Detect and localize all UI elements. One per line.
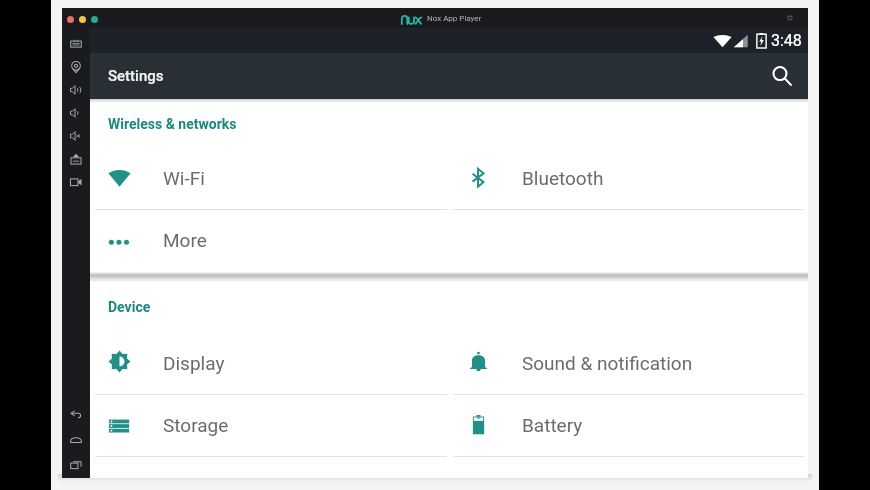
staticText: Wi-Fi [163, 167, 205, 189]
button[interactable]: Location [62, 55, 90, 78]
staticText: More [163, 229, 207, 251]
button[interactable]: Home [62, 427, 90, 452]
staticText: Device [108, 299, 151, 315]
button[interactable]: Screenshot [62, 32, 90, 55]
button[interactable]: Install APK [62, 147, 90, 170]
staticText: Storage [163, 414, 229, 436]
staticText: Wireless & networks [108, 116, 237, 132]
button[interactable]: Recents [62, 452, 90, 477]
staticText: Sound & notification [522, 352, 693, 374]
button[interactable]: Storage [90, 395, 449, 457]
staticText: 3:48 [771, 31, 802, 50]
button[interactable]: Wi-Fi [90, 148, 449, 210]
staticText: Display [163, 352, 225, 374]
button[interactable]: Display [90, 332, 449, 395]
button[interactable]: Volume up [62, 78, 90, 101]
button[interactable]: Mute [62, 124, 90, 147]
button[interactable]: Search [764, 58, 800, 94]
button[interactable]: Bluetooth [449, 148, 808, 210]
button[interactable]: Battery [449, 395, 808, 457]
staticText: Battery [522, 414, 583, 436]
staticText: Bluetooth [522, 167, 604, 189]
button[interactable]: Back [62, 402, 90, 427]
staticText: Nox App Player [427, 14, 482, 23]
button[interactable]: Volume down [62, 101, 90, 124]
other: Settings [786, 14, 794, 22]
staticText: Settings [108, 67, 164, 85]
button[interactable]: Sound & notification [449, 332, 808, 395]
button[interactable]: Record [62, 170, 90, 193]
button[interactable]: More [90, 210, 449, 272]
